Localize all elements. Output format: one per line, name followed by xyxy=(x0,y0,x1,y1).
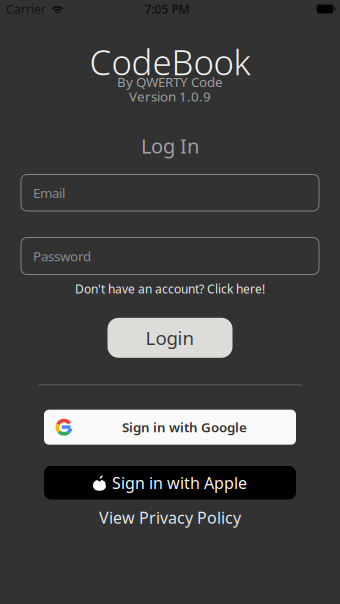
staticText: Email xyxy=(33,184,65,202)
staticText: By QWERTY Code xyxy=(117,73,223,91)
button[interactable]: Email xyxy=(21,174,319,211)
button[interactable]: Login xyxy=(107,318,232,358)
staticText: Sign in with Apple xyxy=(112,472,247,493)
staticText: View Privacy Policy xyxy=(99,507,241,528)
staticText: Version 1.0.9 xyxy=(129,87,211,105)
staticText: 7:05 PM xyxy=(144,1,189,17)
staticText: Carrier xyxy=(6,1,46,17)
staticText: Log In xyxy=(141,132,199,159)
staticText: Sign in with Google xyxy=(122,418,247,436)
button[interactable]: Don't have an account? Click here! xyxy=(75,281,265,297)
button[interactable]: Sign in with Google xyxy=(44,410,296,445)
button[interactable]: View Privacy Policy xyxy=(99,507,241,528)
button[interactable]: Password xyxy=(21,237,319,274)
staticText: Login xyxy=(145,325,194,350)
button[interactable]: Sign in with Apple xyxy=(44,466,296,499)
staticText: Don't have an account? Click here! xyxy=(75,281,265,297)
staticText: CodeBook xyxy=(89,39,250,85)
staticText: Password xyxy=(33,247,91,265)
